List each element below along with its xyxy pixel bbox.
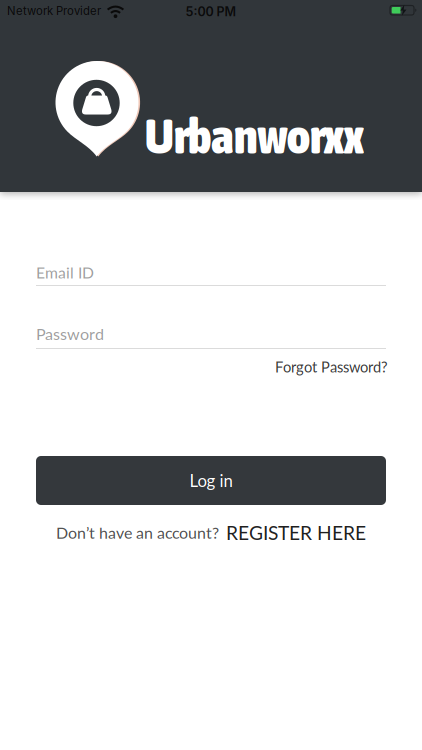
staticText: Network Provider: [7, 4, 101, 18]
button[interactable]: Log in: [36, 456, 386, 505]
staticText: Forgot Password?: [275, 358, 388, 376]
staticText: Urbanworxx: [145, 108, 364, 164]
button[interactable]: Forgot Password?: [275, 358, 388, 376]
button[interactable]: REGISTER HERE: [226, 521, 366, 544]
staticText: Don’t have an account?: [56, 523, 219, 542]
staticText: REGISTER HERE: [226, 521, 366, 544]
staticText: Password: [36, 324, 104, 343]
staticText: 5:00 PM: [185, 4, 236, 19]
staticText: Email ID: [36, 263, 94, 282]
staticText: Log in: [189, 470, 232, 491]
